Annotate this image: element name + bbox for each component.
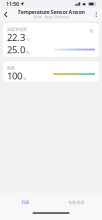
staticText: 温度和湿度 (7, 27, 27, 32)
staticText: 智能场景 (68, 200, 84, 205)
button[interactable]: Back (0, 8, 12, 21)
staticText: % (26, 50, 29, 55)
staticText: 25.0 (7, 43, 25, 56)
staticText: 22.3 (7, 31, 25, 43)
staticText: °C (26, 37, 31, 43)
staticText: 11:56 (6, 0, 19, 8)
button[interactable]: 我家 (0, 192, 51, 212)
staticText: 电量 (7, 65, 15, 70)
staticText: Temperature Sensor Anson (17, 8, 84, 15)
staticText: 100 (7, 70, 22, 82)
staticText: Home · Anson Bedroom (34, 15, 68, 19)
staticText: % (23, 76, 26, 81)
button[interactable]: 智能场景 (51, 192, 102, 212)
button[interactable]: More options (90, 8, 102, 21)
staticText: 我家 (21, 200, 29, 205)
